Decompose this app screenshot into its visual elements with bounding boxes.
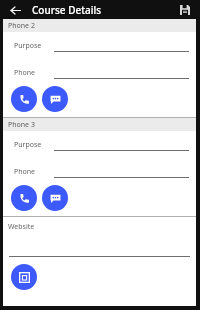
staticText: Course Details <box>32 3 102 17</box>
staticText: Purpose <box>14 140 42 150</box>
button[interactable]: Open website <box>11 264 37 290</box>
button[interactable]: Message <box>42 86 68 112</box>
button[interactable]: Save <box>177 2 193 18</box>
staticText: Phone <box>14 167 36 177</box>
staticText: Purpose <box>14 41 42 51</box>
button[interactable]: Call <box>11 185 37 211</box>
button[interactable]: Message <box>42 185 68 211</box>
button[interactable]: Call <box>11 86 37 112</box>
staticText: Website <box>8 222 35 232</box>
staticText: Phone 3 <box>8 120 35 130</box>
staticText: Phone 2 <box>8 21 35 31</box>
staticText: Phone <box>14 68 36 78</box>
button[interactable]: Back <box>7 2 23 18</box>
